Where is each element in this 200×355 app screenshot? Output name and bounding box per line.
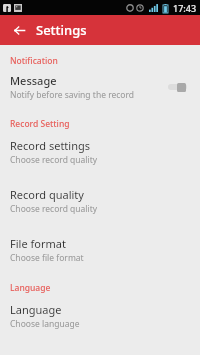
- staticText: Record Setting: [10, 118, 70, 130]
- staticText: Message: [10, 73, 57, 88]
- staticText: 17:43: [173, 2, 197, 14]
- button[interactable]: Record settings: [0, 137, 200, 167]
- staticText: Choose record quality: [10, 203, 98, 215]
- button[interactable]: Record quality: [0, 186, 200, 216]
- staticText: Language: [10, 302, 62, 317]
- button[interactable]: File format: [0, 235, 200, 265]
- staticText: Notification: [10, 55, 58, 67]
- button[interactable]: Toggle message notification: [166, 78, 192, 96]
- staticText: Record quality: [10, 187, 84, 202]
- staticText: Notify before saving the record: [10, 89, 135, 101]
- button[interactable]: Back: [6, 17, 32, 43]
- button[interactable]: Message: [0, 73, 200, 101]
- staticText: Record settings: [10, 138, 91, 153]
- staticText: Choose file format: [10, 252, 84, 264]
- staticText: Settings: [36, 21, 87, 39]
- staticText: Choose record quality: [10, 154, 98, 166]
- staticText: Language: [10, 282, 51, 294]
- staticText: Choose language: [10, 318, 80, 330]
- staticText: File format: [10, 236, 66, 251]
- button[interactable]: Language: [0, 301, 200, 331]
